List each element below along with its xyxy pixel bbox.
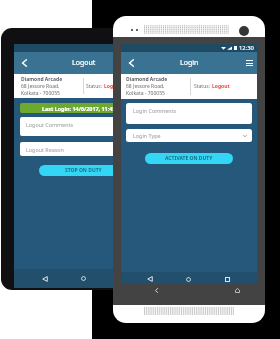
staticText: Logout Comments xyxy=(26,121,73,128)
button[interactable]: Home xyxy=(226,283,248,298)
staticText: STOP ON DUTY xyxy=(65,167,102,174)
button[interactable]: ACTIVATE ON DUTY xyxy=(145,153,233,164)
button[interactable]: Login Type xyxy=(126,129,252,142)
button[interactable]: Recents xyxy=(208,273,247,285)
staticText: Login Comments xyxy=(133,107,177,114)
button[interactable]: Back xyxy=(131,273,169,285)
staticText: Kolkata - 700055 xyxy=(21,90,60,97)
staticText: Logout xyxy=(104,83,122,90)
staticText: Login Type xyxy=(133,132,161,139)
staticText: Last Login: 14/6/2017, 11:45 AM xyxy=(42,105,126,112)
button[interactable]: Login Comments xyxy=(126,103,252,124)
button[interactable]: Back xyxy=(14,52,34,74)
staticText: ACTIVATE ON DUTY xyxy=(165,155,213,162)
staticText: Diamond Arcade xyxy=(126,76,168,83)
staticText: 12:30 xyxy=(239,44,254,52)
staticText: 68 Jessore Road, xyxy=(21,83,60,90)
staticText: Login xyxy=(180,58,199,68)
staticText: Logout Reason xyxy=(26,146,64,153)
button[interactable]: Recents xyxy=(103,269,142,288)
staticText: Diamond Arcade xyxy=(21,76,63,83)
button[interactable]: Home xyxy=(169,273,208,285)
button[interactable]: Back xyxy=(26,269,64,288)
button[interactable]: Home xyxy=(64,269,103,288)
staticText: Logout xyxy=(212,83,230,90)
button[interactable]: Logout Comments xyxy=(20,117,147,136)
button[interactable]: STOP ON DUTY xyxy=(39,165,128,176)
button[interactable]: Logout Reason xyxy=(20,142,147,156)
staticText: Kolkata - 700055 xyxy=(126,90,165,97)
button[interactable]: Back xyxy=(121,52,141,74)
staticText: 68 Jessore Road, xyxy=(126,83,165,90)
staticText: Status: xyxy=(194,83,212,90)
button[interactable]: Back xyxy=(145,283,167,298)
staticText: Logout xyxy=(72,58,96,68)
staticText: Status: xyxy=(86,83,104,90)
button[interactable]: Menu xyxy=(241,52,257,74)
